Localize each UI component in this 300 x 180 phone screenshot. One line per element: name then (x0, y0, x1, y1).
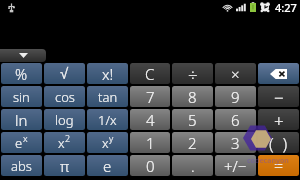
staticText: + (274, 109, 284, 130)
staticText: tan (98, 88, 118, 106)
staticText: 6 (231, 110, 240, 130)
staticText: ÷ (188, 63, 198, 84)
staticText: 1/x (98, 111, 117, 129)
button[interactable]: + (258, 109, 299, 130)
staticText: sin (13, 88, 30, 106)
staticText: = (274, 155, 284, 176)
staticText: ( ) (269, 132, 288, 153)
staticText: log (55, 111, 74, 129)
staticText: . (191, 156, 195, 176)
staticText: C (145, 64, 155, 84)
button[interactable]: % (1, 63, 42, 84)
button[interactable]: log (44, 109, 85, 130)
staticText: codecanyon (247, 156, 289, 166)
button[interactable]: 2 (172, 132, 213, 153)
staticText: 2 (188, 133, 197, 153)
button[interactable]: 1 (130, 132, 170, 153)
staticText: +/− (224, 156, 247, 176)
button[interactable]: Delete (258, 63, 299, 84)
staticText: 3 (231, 133, 240, 153)
button[interactable]: 0 (130, 155, 170, 176)
staticText: 1 (146, 133, 155, 153)
button[interactable]: × (215, 63, 256, 84)
button[interactable]: . (172, 155, 213, 176)
staticText: 5 (188, 110, 197, 130)
staticText: 2 (65, 132, 71, 144)
button[interactable]: e (87, 155, 128, 176)
button[interactable]: 6 (215, 109, 256, 130)
button[interactable]: 9 (215, 86, 256, 107)
button[interactable]: x (44, 132, 85, 153)
button[interactable]: = (258, 155, 299, 176)
button[interactable]: 7 (130, 86, 170, 107)
staticText: y (109, 132, 114, 144)
staticText: % (15, 64, 28, 84)
staticText: − (274, 86, 284, 107)
staticText: 0 (146, 156, 155, 176)
staticText: e (103, 156, 112, 176)
button[interactable]: ÷ (172, 63, 213, 84)
staticText: x (58, 134, 65, 152)
staticText: 9 (231, 87, 240, 107)
staticText: x (102, 134, 109, 152)
staticText: abs (11, 157, 32, 175)
button[interactable]: − (258, 86, 299, 107)
button[interactable]: x! (87, 63, 128, 84)
button[interactable]: ( ) (258, 132, 299, 153)
button[interactable]: 5 (172, 109, 213, 130)
button[interactable]: +/− (215, 155, 256, 176)
button[interactable]: 3 (215, 132, 256, 153)
button[interactable]: abs (1, 155, 42, 176)
staticText: 7 (146, 87, 155, 107)
button[interactable]: x (87, 132, 128, 153)
button[interactable]: C (130, 63, 170, 84)
button[interactable]: 1/x (87, 109, 128, 130)
staticText: x! (102, 64, 114, 84)
staticText: 4:27 (275, 0, 297, 14)
staticText: e (15, 134, 23, 152)
staticText: × (231, 64, 240, 84)
button[interactable]: π (44, 155, 85, 176)
staticText: ln (15, 110, 28, 130)
staticText: cos (55, 88, 75, 106)
staticText: 4 (146, 110, 155, 130)
button[interactable]: ln (1, 109, 42, 130)
staticText: π (60, 156, 70, 176)
button[interactable]: sin (1, 86, 42, 107)
button[interactable]: 8 (172, 86, 213, 107)
staticText: 8 (188, 87, 197, 107)
button[interactable]: tan (87, 86, 128, 107)
button[interactable]: e (1, 132, 42, 153)
button[interactable]: Show history (0, 49, 46, 62)
button[interactable]: cos (44, 86, 85, 107)
button[interactable]: 4 (130, 109, 170, 130)
staticText: x (23, 132, 28, 144)
staticText: √ (60, 65, 69, 82)
button[interactable]: √ (44, 63, 85, 84)
